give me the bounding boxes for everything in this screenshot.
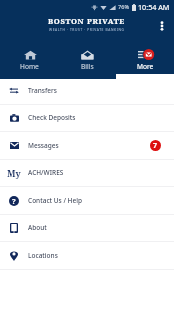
staticText: BOSTON PRIVATE: [48, 16, 126, 26]
button[interactable]: ?: [0, 187, 174, 214]
button[interactable]: More options: [151, 15, 173, 37]
button[interactable]: About: [0, 214, 174, 241]
staticText: 10:54 AM: [138, 2, 170, 12]
staticText: ACH/WIRES: [28, 168, 64, 177]
staticText: Home: [20, 62, 39, 71]
staticText: About: [28, 223, 47, 232]
staticText: ?: [12, 196, 16, 206]
staticText: Locations: [28, 251, 58, 260]
staticText: 76%: [118, 3, 130, 11]
button[interactable]: More: [116, 39, 174, 79]
staticText: 7: [153, 141, 158, 151]
staticText: Check Deposits: [28, 113, 76, 122]
staticText: Transfers: [28, 86, 57, 95]
staticText: My: [7, 167, 21, 179]
button[interactable]: Check Deposits: [0, 104, 174, 131]
staticText: More: [137, 62, 154, 71]
staticText: Messages: [28, 141, 59, 150]
staticText: Contact Us / Help: [28, 196, 82, 205]
button[interactable]: Locations: [0, 242, 174, 269]
button[interactable]: My: [0, 159, 174, 186]
staticText: WEALTH · TRUST · PRIVATE BANKING: [49, 27, 125, 31]
button[interactable]: Messages: [0, 132, 174, 159]
staticText: Bills: [81, 62, 94, 71]
button[interactable]: Transfers: [0, 77, 174, 104]
button[interactable]: Bills: [58, 39, 116, 79]
button[interactable]: Home: [0, 39, 58, 79]
